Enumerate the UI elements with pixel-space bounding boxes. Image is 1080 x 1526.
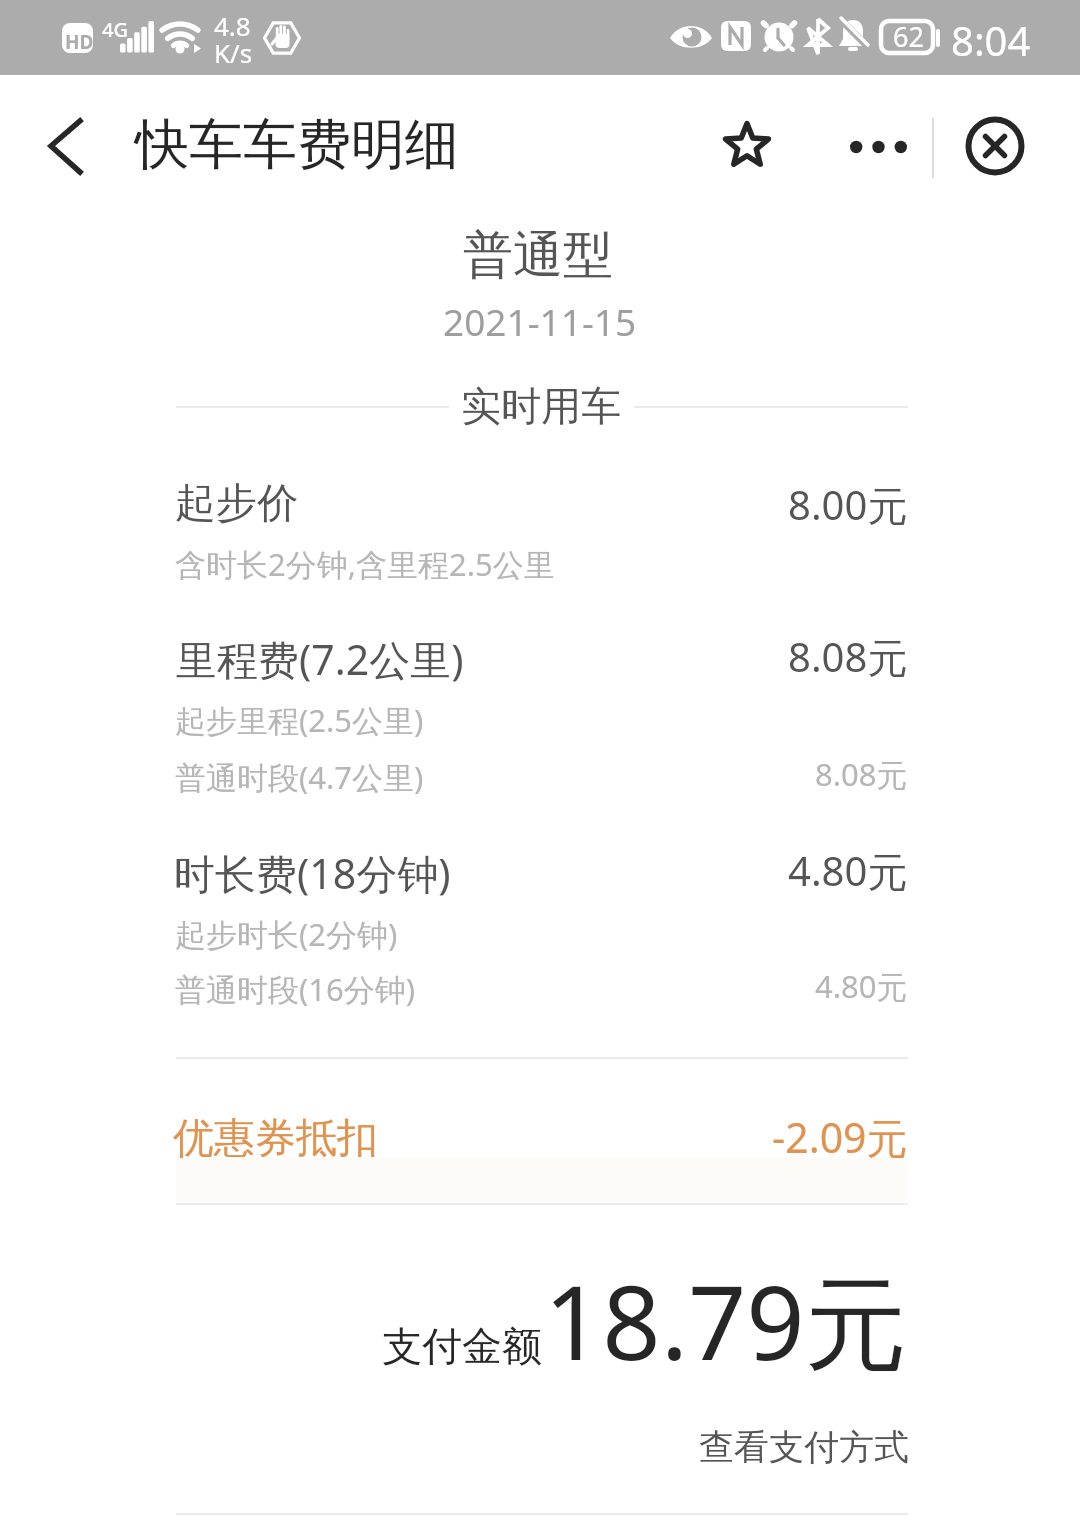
staticText: 18.79元 (544, 1251, 907, 1390)
button[interactable]: More options (836, 120, 922, 174)
button[interactable] (0, 913, 1080, 953)
button[interactable]: Back (26, 108, 106, 188)
button[interactable] (0, 845, 1080, 898)
staticText: 里程费(7.2公里) (176, 631, 464, 687)
staticText: 起步时长(2分钟) (175, 913, 398, 955)
staticText: 查看支付方式 (699, 1425, 909, 1469)
staticText: 4.80元 (815, 965, 908, 1007)
staticText: 快车车费明细 (135, 111, 459, 179)
staticText: 普通型 (463, 224, 613, 287)
staticText: K/s (214, 35, 253, 70)
staticText: 时长费(18分钟) (174, 845, 451, 901)
staticText: -2.09元 (772, 1109, 908, 1165)
staticText: 4.8 (214, 8, 251, 43)
button[interactable] (0, 1113, 1080, 1166)
staticText: 起步价 (175, 478, 298, 530)
staticText: 支付金额 (382, 1321, 542, 1371)
staticText: 8.08元 (815, 753, 908, 795)
staticText: 8.08元 (788, 629, 908, 684)
staticText: 优惠券抵扣 (173, 1113, 378, 1165)
staticText: 8.00元 (788, 477, 908, 532)
staticText: 普通时段(16分钟) (175, 968, 416, 1010)
button[interactable] (0, 968, 1080, 1008)
staticText: 含时长2分钟,含里程2.5公里 (175, 543, 555, 585)
staticText: 4.80元 (788, 843, 908, 898)
button[interactable]: 查看支付方式 (699, 1425, 909, 1469)
staticText: 起步里程(2.5公里) (175, 699, 424, 741)
button[interactable]: Favorite (713, 111, 781, 179)
staticText: HD (65, 29, 94, 55)
button[interactable] (0, 543, 1080, 583)
staticText: 普通时段(4.7公里) (175, 756, 424, 798)
button[interactable] (0, 478, 1080, 531)
staticText: 实时用车 (461, 381, 621, 431)
button[interactable]: Close (959, 110, 1031, 182)
button[interactable]: 快车车费明细 (135, 111, 459, 179)
button[interactable] (0, 756, 1080, 796)
staticText: 8:04 (951, 13, 1031, 67)
staticText: 62 (893, 18, 924, 55)
button[interactable] (0, 699, 1080, 739)
staticText: 4G (102, 16, 128, 43)
button[interactable] (0, 631, 1080, 684)
staticText: 2021-11-15 (443, 296, 637, 346)
